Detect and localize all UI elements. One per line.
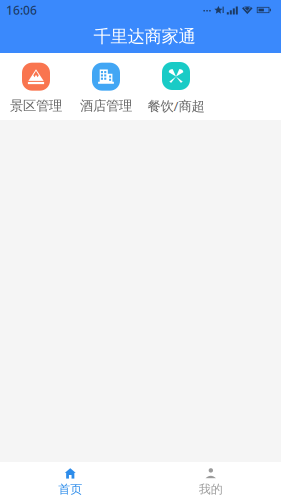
staticText: 酒店管理 [80,98,132,114]
staticText: 千里达商家通 [93,26,195,47]
button[interactable]: 首页 [0,462,140,500]
staticText: 餐饮/商超 [147,97,204,115]
button[interactable]: 餐饮/商超 [141,62,211,115]
staticText: 景区管理 [10,98,62,114]
staticText: 首页 [58,482,82,497]
staticText: 16:06 [6,2,37,18]
staticText: 我的 [199,482,223,497]
button[interactable]: 酒店管理 [71,63,141,114]
button[interactable]: 景区管理 [1,63,71,114]
button[interactable]: 我的 [140,462,281,500]
